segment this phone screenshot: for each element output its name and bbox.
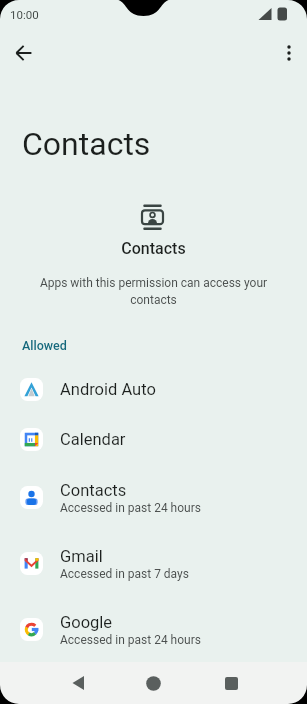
staticText: Allowed xyxy=(22,338,67,353)
staticText: Accessed in past 7 days xyxy=(60,567,189,581)
staticText: Gmail xyxy=(60,547,103,566)
staticText: Accessed in past 24 hours xyxy=(60,501,201,515)
staticText: Calendar xyxy=(60,430,126,449)
staticText: Android Auto xyxy=(60,380,156,399)
button[interactable] xyxy=(211,662,251,704)
button[interactable] xyxy=(58,662,98,704)
staticText: Apps with this permission can access you… xyxy=(0,276,307,307)
button[interactable]: Android Auto xyxy=(0,364,307,414)
button[interactable]: Calendar xyxy=(0,414,307,464)
staticText: Contacts xyxy=(22,125,151,163)
staticText: Accessed in past 24 hours xyxy=(60,633,201,647)
staticText: Contacts xyxy=(0,239,307,258)
button[interactable] xyxy=(133,662,173,704)
button[interactable] xyxy=(4,33,44,73)
button[interactable]: Gmail xyxy=(0,530,307,596)
staticText: 10:00 xyxy=(10,8,39,21)
button[interactable]: Contacts xyxy=(0,464,307,530)
button[interactable]: Google xyxy=(0,596,307,662)
button[interactable] xyxy=(269,33,307,73)
staticText: Google xyxy=(60,613,113,632)
staticText: Contacts xyxy=(60,481,127,500)
